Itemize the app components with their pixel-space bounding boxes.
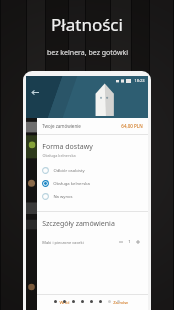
- button[interactable]: Decrease: [117, 238, 125, 246]
- staticText: Odbiór osobisty: [53, 168, 85, 174]
- button[interactable]: Twoje zamówienie: [26, 118, 148, 134]
- button[interactable]: [54, 300, 57, 303]
- button[interactable]: [117, 300, 120, 303]
- staticText: Obsługa kelnerska: [42, 153, 76, 158]
- button[interactable]: Na wynos: [26, 190, 148, 203]
- staticText: Wróć: [59, 300, 70, 306]
- staticText: Forma dostawy: [42, 142, 93, 152]
- staticText: Płatności: [51, 13, 123, 36]
- staticText: 64,00 PLN: [121, 123, 143, 129]
- button[interactable]: Increase: [134, 238, 142, 246]
- staticText: 1: [128, 239, 131, 245]
- button[interactable]: Zamów: [92, 295, 148, 310]
- button[interactable]: Odbiór osobisty: [26, 164, 148, 177]
- button[interactable]: [108, 300, 111, 303]
- staticText: Na wynos: [53, 194, 73, 200]
- staticText: Zamów: [113, 300, 128, 306]
- button[interactable]: Wróć: [37, 295, 92, 310]
- button[interactable]: [72, 300, 75, 303]
- button[interactable]: [63, 300, 66, 303]
- button[interactable]: Back: [30, 87, 41, 98]
- staticText: Twoje zamówienie: [42, 123, 81, 129]
- button[interactable]: [99, 300, 102, 303]
- staticText: Obsługa kelnerska: [53, 181, 90, 187]
- button[interactable]: Obsługa kelnerska: [26, 177, 148, 190]
- staticText: bez kelnera, bez gotówki: [47, 48, 128, 58]
- staticText: 18:23: [134, 78, 145, 83]
- button[interactable]: [81, 300, 84, 303]
- staticText: Maki i pieczone ozorki: [42, 240, 84, 245]
- staticText: Szczegóły zamówienia: [42, 219, 115, 229]
- button[interactable]: [90, 300, 93, 303]
